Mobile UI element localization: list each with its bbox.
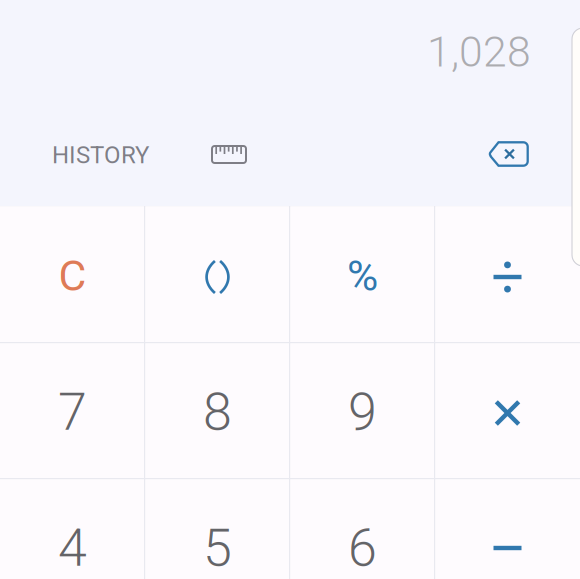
- button[interactable]: 6: [290, 478, 435, 579]
- staticText: HISTORY: [52, 141, 149, 169]
- button[interactable]: 9: [290, 342, 435, 478]
- button[interactable]: 8: [145, 342, 290, 478]
- staticText: C: [58, 251, 86, 301]
- button[interactable]: Backspace: [487, 141, 529, 167]
- button[interactable]: Parentheses: [145, 206, 290, 342]
- staticText: %: [347, 251, 378, 301]
- button[interactable]: %: [290, 206, 435, 342]
- button[interactable]: C: [0, 206, 145, 342]
- staticText: 9: [348, 381, 377, 442]
- button[interactable]: HISTORY: [52, 140, 149, 170]
- staticText: 8: [203, 381, 232, 442]
- button[interactable]: Subtract: [435, 478, 580, 579]
- staticText: 5: [203, 517, 232, 578]
- staticText: 6: [348, 517, 377, 578]
- staticText: 4: [58, 517, 87, 578]
- button[interactable]: 7: [0, 342, 145, 478]
- button[interactable]: 5: [145, 478, 290, 579]
- staticText: 1,028: [427, 27, 531, 77]
- button[interactable]: 4: [0, 478, 145, 579]
- button[interactable]: Unit converter: [212, 146, 246, 163]
- staticText: 7: [58, 381, 87, 442]
- button[interactable]: Divide: [435, 206, 580, 342]
- button[interactable]: Multiply: [435, 342, 580, 478]
